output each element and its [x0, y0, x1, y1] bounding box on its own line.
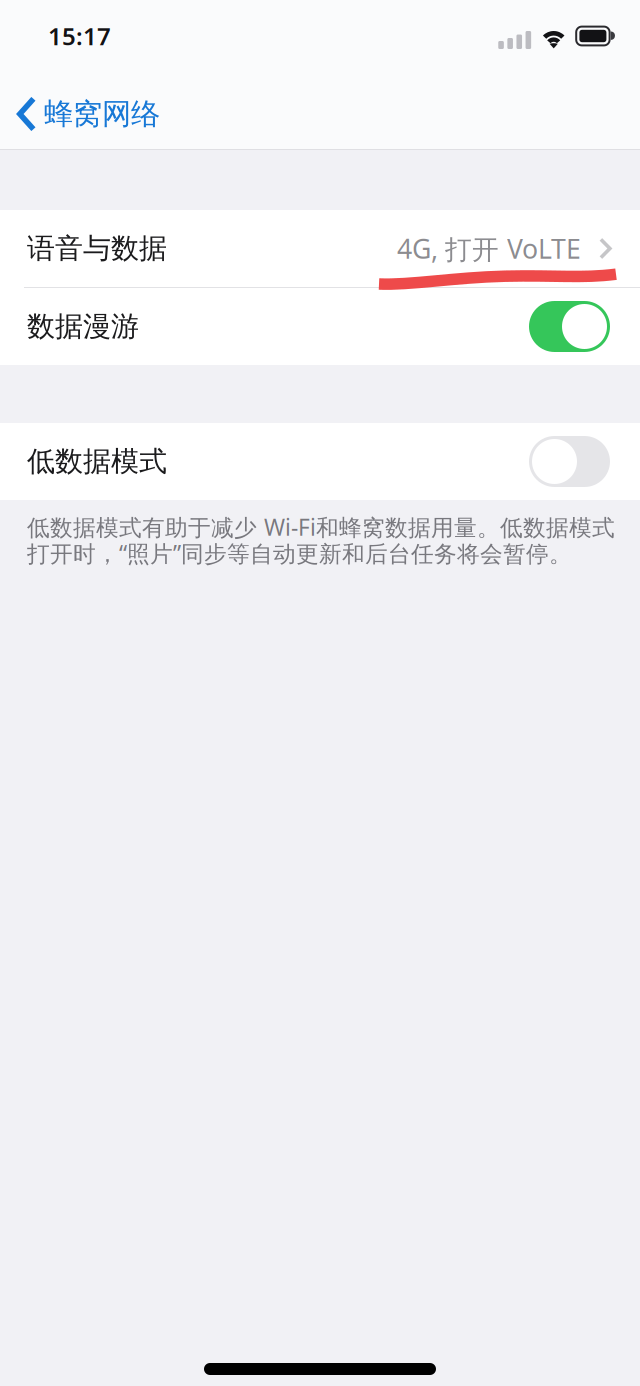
staticText: 语音与数据: [27, 231, 167, 266]
button[interactable]: 返回 蜂窝网络: [0, 77, 172, 145]
staticText: 4G, 打开 VoLTE: [397, 231, 581, 266]
button[interactable]: 数据漫游: [0, 288, 640, 365]
button[interactable]: 语音与数据: [0, 210, 640, 287]
staticText: 低数据模式有助于减少 Wi-Fi和蜂窝数据用量。低数据模式打开时，“照片”同步等…: [27, 512, 615, 568]
button[interactable]: 低数据模式: [0, 423, 640, 500]
staticText: 15:17: [48, 20, 111, 52]
staticText: 蜂窝网络: [44, 96, 160, 132]
staticText: 数据漫游: [27, 309, 139, 344]
staticText: 低数据模式: [27, 444, 167, 479]
